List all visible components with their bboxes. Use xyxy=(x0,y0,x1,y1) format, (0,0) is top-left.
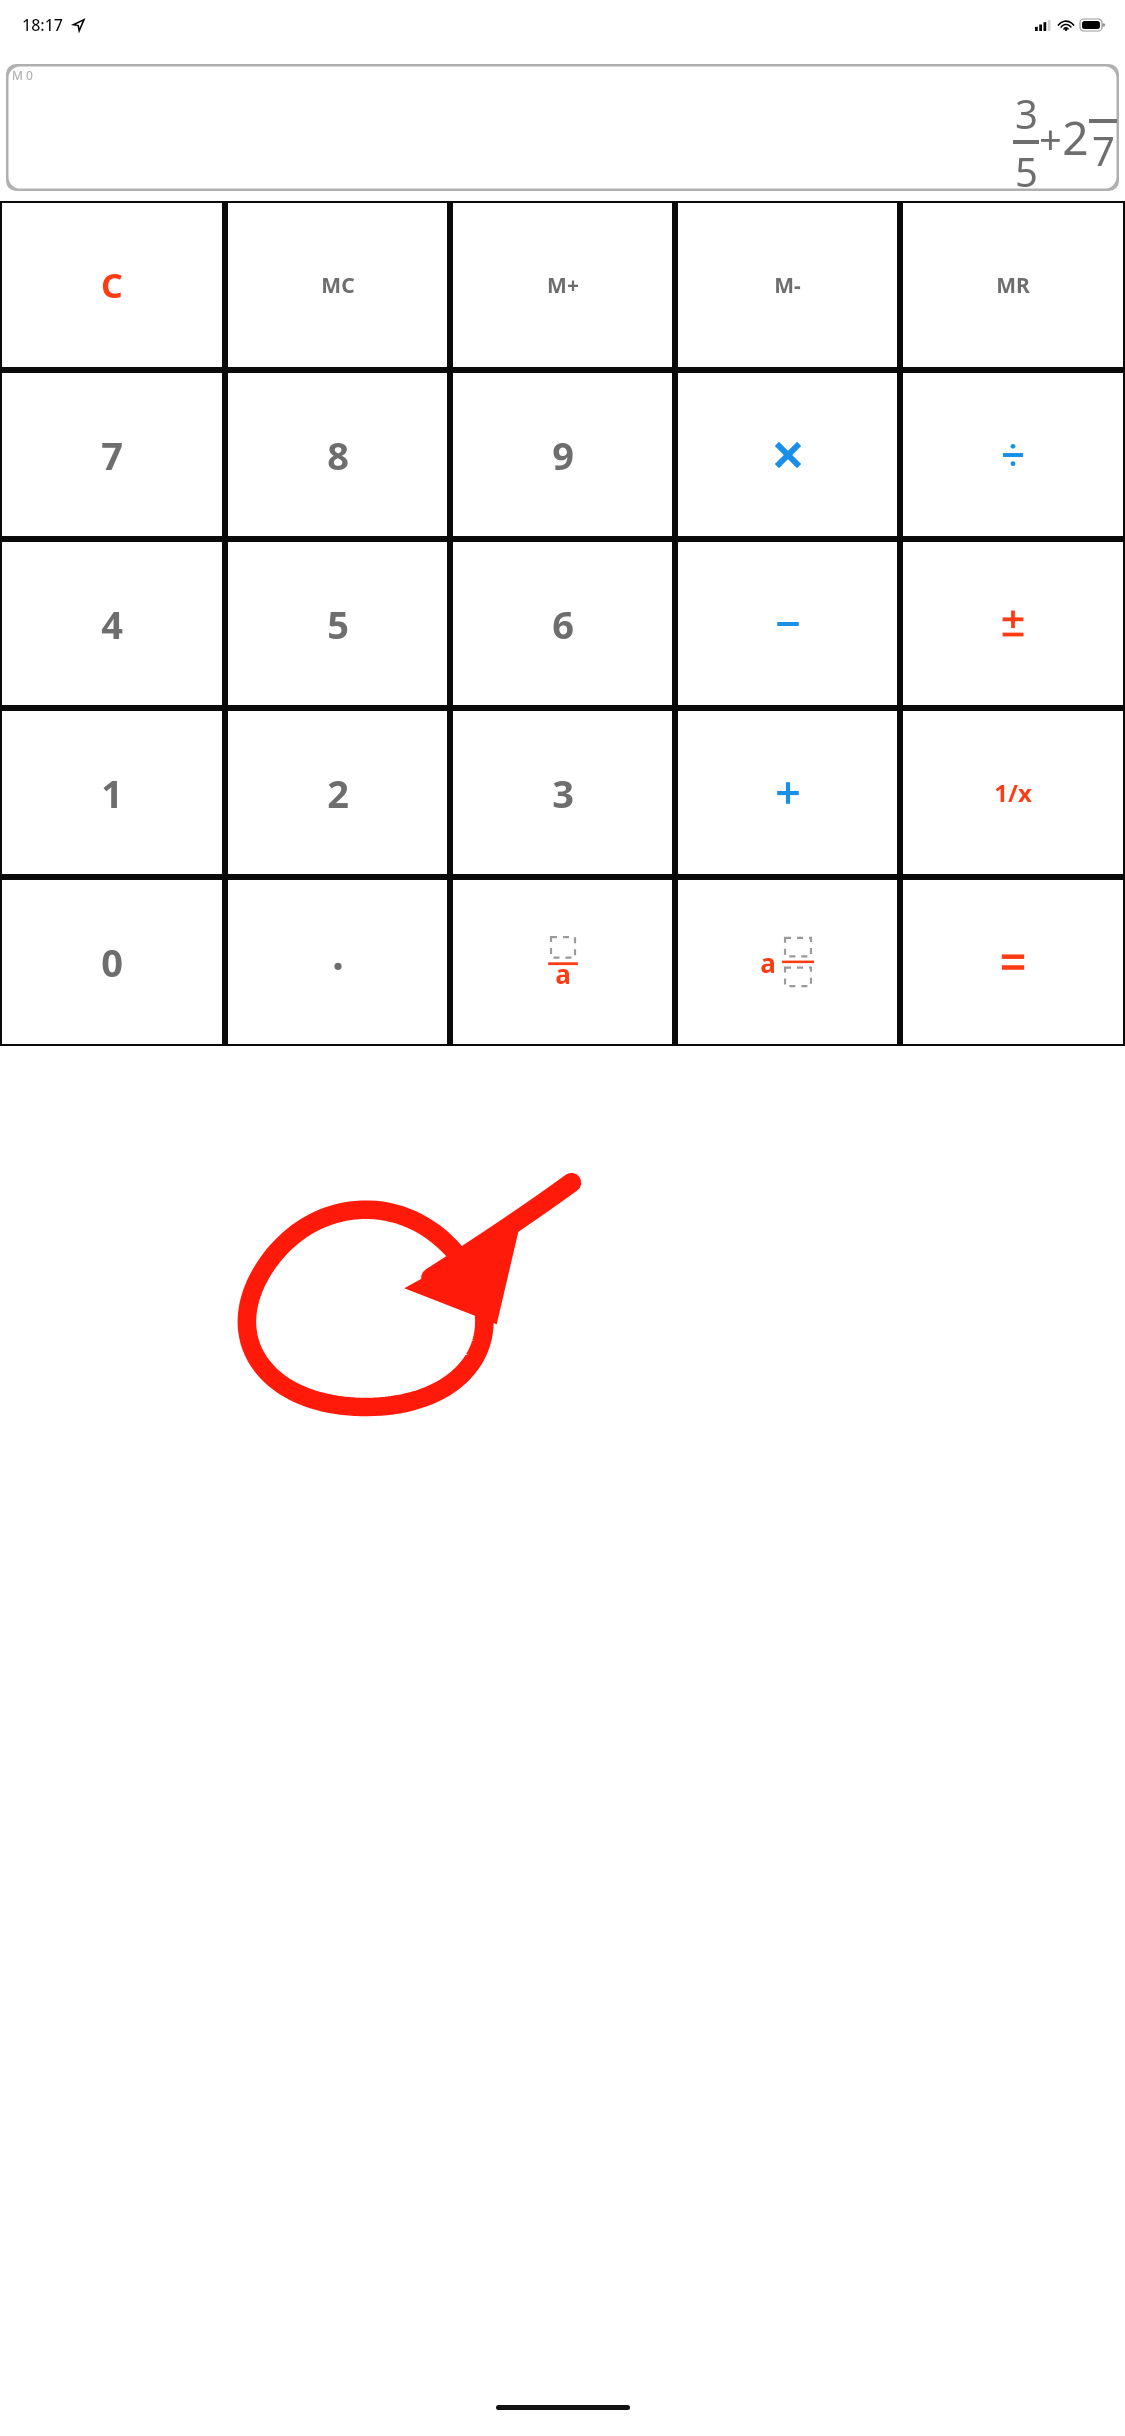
staticText: 3 xyxy=(552,767,574,819)
staticText: 7 xyxy=(1092,123,1115,177)
button[interactable]: Minus xyxy=(678,542,897,705)
staticText: 5 xyxy=(327,598,349,650)
other: Mixed fraction xyxy=(743,931,833,993)
staticText: 2 xyxy=(327,767,349,819)
button[interactable]: Multiply xyxy=(678,373,897,536)
button[interactable]: 9 xyxy=(453,373,672,536)
staticText: M+ xyxy=(547,271,579,300)
button[interactable]: 0 xyxy=(2,880,222,1044)
button[interactable]: M+ xyxy=(453,203,672,367)
staticText: + xyxy=(1039,111,1062,165)
button[interactable]: Mixed fraction xyxy=(678,880,897,1044)
button[interactable]: 2 xyxy=(228,711,447,874)
button[interactable]: Plus xyxy=(678,711,897,874)
button[interactable]: 4 xyxy=(2,542,222,705)
button[interactable]: 8 xyxy=(228,373,447,536)
button[interactable]: 1/x xyxy=(903,711,1123,874)
other: Equals xyxy=(995,944,1031,980)
button[interactable]: MR xyxy=(903,203,1123,367)
button[interactable]: MC xyxy=(228,203,447,367)
staticText: 18:17 xyxy=(22,14,63,36)
staticText: MC xyxy=(321,271,355,300)
button[interactable]: Simple fraction xyxy=(453,880,672,1044)
staticText: 1/x xyxy=(994,776,1032,809)
button[interactable]: Equals xyxy=(903,880,1123,1044)
staticText: 5 xyxy=(1015,144,1038,191)
staticText: 1 xyxy=(101,767,123,819)
staticText: a xyxy=(760,945,776,980)
button[interactable]: Divide xyxy=(903,373,1123,536)
button[interactable]: 7 xyxy=(2,373,222,536)
button[interactable]: 3 xyxy=(453,711,672,874)
other: Divide xyxy=(995,437,1031,473)
staticText: 8 xyxy=(327,429,349,481)
other: Plus minus xyxy=(995,606,1031,642)
other: Decimal point xyxy=(320,944,356,980)
staticText: 4 xyxy=(101,598,123,650)
button[interactable]: 6 xyxy=(453,542,672,705)
staticText: M 0 xyxy=(12,67,33,83)
other: Multiply xyxy=(770,437,806,473)
button[interactable]: Plus minus xyxy=(903,542,1123,705)
staticText: M- xyxy=(774,271,801,300)
staticText: MR xyxy=(996,271,1030,300)
button[interactable]: C xyxy=(2,203,222,367)
other: Minus xyxy=(770,606,806,642)
staticText: 0 xyxy=(101,936,123,988)
button[interactable]: M- xyxy=(678,203,897,367)
other: Simple fraction xyxy=(533,931,593,993)
staticText: 3 xyxy=(1015,86,1038,140)
button[interactable]: 5 xyxy=(228,542,447,705)
other: Plus xyxy=(770,775,806,811)
staticText: 6 xyxy=(552,598,574,650)
button[interactable]: Decimal point xyxy=(228,880,447,1044)
staticText: C xyxy=(101,262,123,308)
staticText: 7 xyxy=(101,429,123,481)
staticText: 9 xyxy=(552,429,574,481)
staticText: 2 xyxy=(1062,106,1089,169)
button[interactable]: 1 xyxy=(2,711,222,874)
staticText: a xyxy=(555,956,571,991)
